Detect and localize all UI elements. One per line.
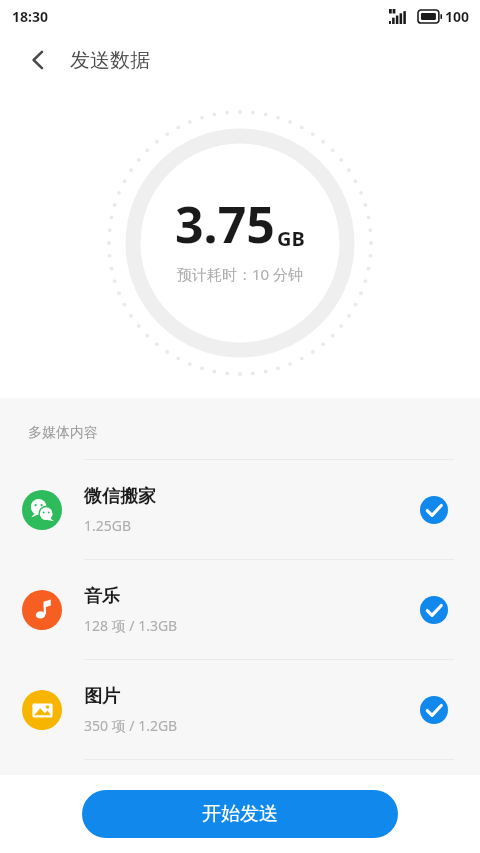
button[interactable]: 开始发送	[82, 790, 398, 838]
staticText: 350 项 / 1.2GB	[84, 716, 178, 735]
button[interactable]: Selected 微信搬家	[414, 490, 454, 530]
staticText: 多媒体内容	[28, 424, 98, 442]
button[interactable]: 图片	[0, 660, 480, 759]
staticText: 开始发送	[202, 802, 278, 826]
staticText: 发送数据	[70, 48, 150, 73]
button[interactable]: 微信搬家	[0, 460, 480, 559]
button[interactable]: Back	[16, 38, 60, 82]
staticText: 微信搬家	[84, 485, 156, 508]
staticText: 音乐	[84, 585, 120, 608]
button[interactable]: Selected 音乐	[414, 590, 454, 630]
staticText: 18:30	[12, 7, 48, 26]
staticText: 图片	[84, 685, 120, 708]
staticText: GB	[277, 225, 305, 252]
button[interactable]: 音乐	[0, 560, 480, 659]
staticText: 预计耗时：10 分钟	[177, 264, 304, 284]
staticText: 100	[445, 7, 470, 26]
staticText: 1.25GB	[84, 516, 132, 535]
button[interactable]: Selected 图片	[414, 690, 454, 730]
staticText: 3.75	[175, 190, 275, 258]
staticText: 128 项 / 1.3GB	[84, 616, 178, 635]
